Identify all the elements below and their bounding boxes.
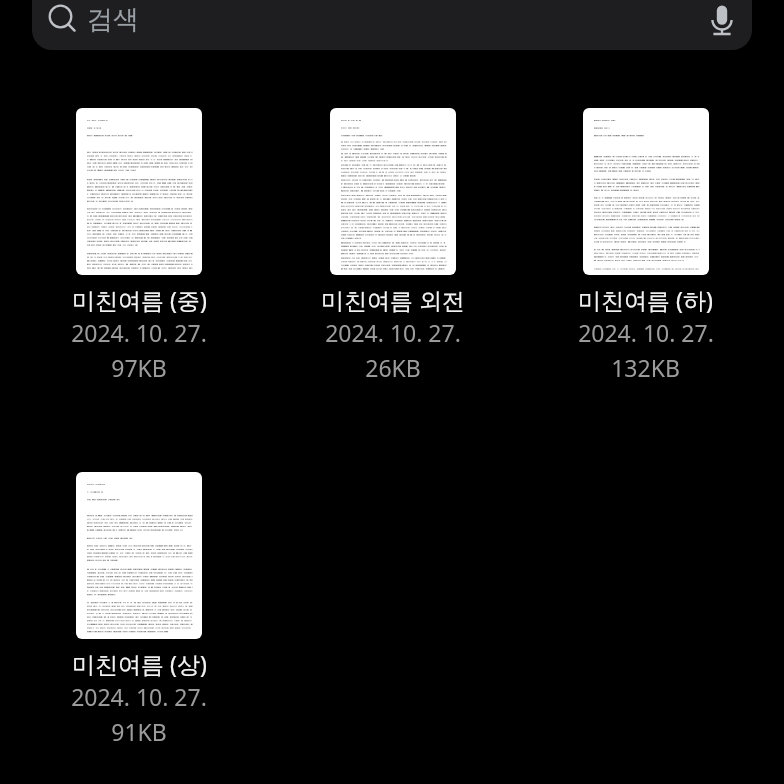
button[interactable]: Voice search [702, 0, 752, 50]
button[interactable]: 미친여름 (상) [12, 472, 266, 740]
staticText: 26KB [365, 352, 421, 383]
staticText: 미친여름 (상) [72, 648, 207, 679]
staticText: 2024. 10. 27. [578, 317, 714, 348]
staticText: 91KB [111, 716, 167, 747]
staticText: 2024. 10. 27. [71, 681, 207, 712]
staticText: 2024. 10. 27. [325, 317, 461, 348]
staticText: 132KB [611, 352, 680, 383]
button[interactable]: 검색 [32, 0, 752, 50]
staticText: 미친여름 외전 [321, 284, 465, 315]
staticText: 검색 [87, 3, 139, 36]
button[interactable]: 미친여름 외전 [266, 108, 519, 376]
button[interactable]: 미친여름 (하) [519, 108, 772, 376]
button[interactable]: 미친여름 (중) [12, 108, 266, 376]
staticText: 미친여름 (하) [578, 284, 713, 315]
staticText: 2024. 10. 27. [71, 317, 207, 348]
staticText: 97KB [111, 352, 167, 383]
staticText: 미친여름 (중) [72, 284, 207, 315]
